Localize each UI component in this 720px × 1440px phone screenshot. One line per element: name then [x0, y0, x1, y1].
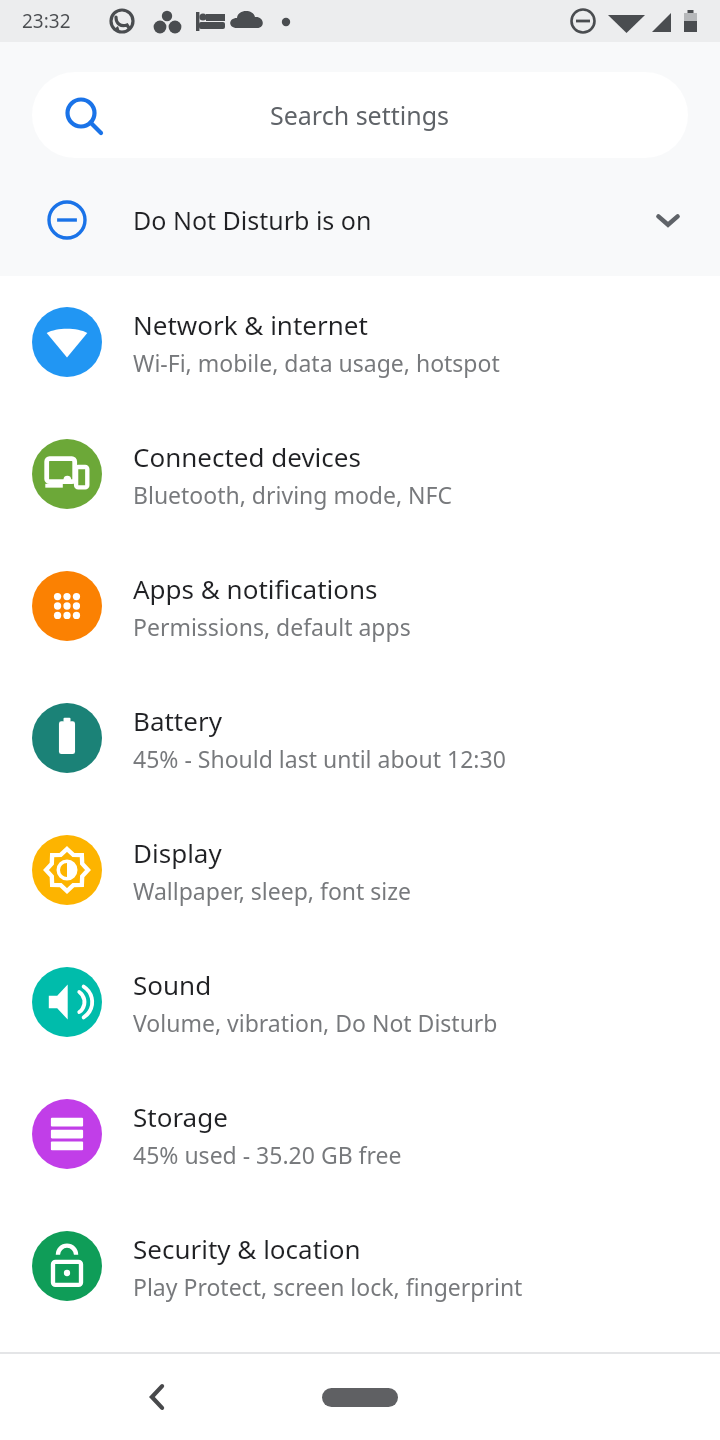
button[interactable]: Search settings — [32, 72, 688, 158]
button[interactable]: Apps & notifications — [0, 540, 720, 672]
staticText: 45% used - 35.20 GB free — [133, 1139, 402, 1170]
staticText: Do Not Disturb is on — [133, 203, 616, 237]
staticText: Display — [133, 835, 222, 870]
staticText: 23:32 — [22, 8, 71, 34]
button[interactable]: Network & internet — [0, 276, 720, 408]
button[interactable]: Do Not Disturb is on — [0, 182, 720, 258]
staticText: Apps & notifications — [133, 571, 378, 606]
staticText: 45% - Should last until about 12:30 — [133, 743, 506, 774]
staticText: Wi-Fi, mobile, data usage, hotspot — [133, 347, 500, 378]
staticText: Network & internet — [133, 307, 368, 342]
staticText: Permissions, default apps — [133, 611, 411, 642]
staticText: Bluetooth, driving mode, NFC — [133, 479, 453, 510]
staticText: Battery — [133, 703, 222, 738]
button[interactable]: Back — [120, 1359, 196, 1435]
staticText: Security & location — [133, 1231, 361, 1266]
staticText: Wallpaper, sleep, font size — [133, 875, 412, 906]
staticText: Storage — [133, 1099, 228, 1134]
button[interactable]: Connected devices — [0, 408, 720, 540]
staticText: Connected devices — [133, 439, 361, 474]
staticText: Volume, vibration, Do Not Disturb — [133, 1007, 498, 1038]
staticText: Play Protect, screen lock, fingerprint — [133, 1271, 523, 1302]
button[interactable]: Security & location — [0, 1200, 720, 1332]
staticText: Sound — [133, 967, 212, 1002]
button[interactable]: Home — [305, 1369, 415, 1425]
button[interactable]: Storage — [0, 1068, 720, 1200]
button[interactable]: Display — [0, 804, 720, 936]
staticText: Search settings — [270, 98, 450, 132]
button[interactable]: Sound — [0, 936, 720, 1068]
button[interactable]: Battery — [0, 672, 720, 804]
